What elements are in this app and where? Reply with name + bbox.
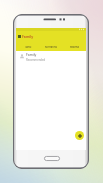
button[interactable]: контакты bbox=[40, 42, 63, 51]
staticText: Recommended bbox=[26, 58, 46, 62]
button[interactable]: New chat bbox=[75, 131, 84, 140]
staticText: Family bbox=[26, 52, 37, 57]
staticText: чаты bbox=[25, 45, 32, 49]
staticText: контакты bbox=[45, 45, 58, 49]
button[interactable]: Family bbox=[16, 31, 86, 42]
staticText: Family bbox=[22, 34, 34, 39]
button[interactable]: чаты bbox=[16, 42, 40, 51]
button[interactable]: звонки bbox=[63, 42, 86, 51]
staticText: звонки bbox=[70, 45, 80, 49]
button[interactable]: Family bbox=[16, 51, 86, 62]
